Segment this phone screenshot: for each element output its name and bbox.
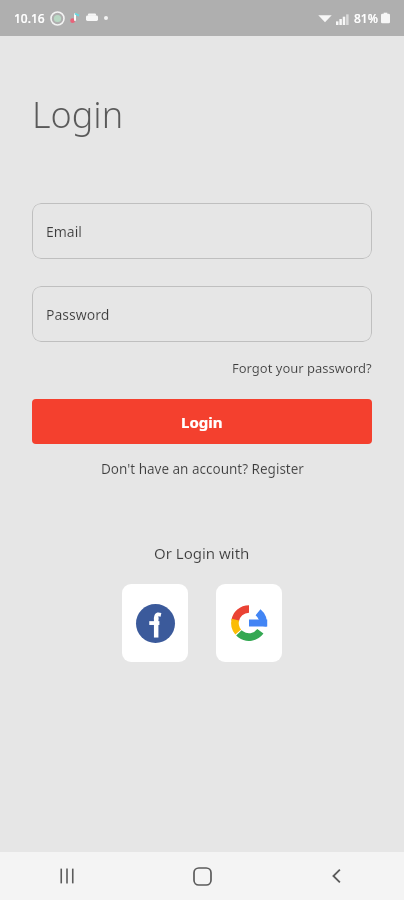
staticText: Or Login with [154,543,250,563]
button[interactable]: Login [32,399,372,444]
button[interactable]: Forgot your password? [232,357,372,379]
staticText: 10.16 [14,10,45,26]
staticText: Password [46,305,110,324]
staticText: Forgot your password? [232,359,372,377]
staticText: Email [46,222,82,241]
staticText: Login [32,90,124,139]
staticText: Don't have an account? Register [101,460,304,478]
button[interactable]: Home [174,852,230,900]
button[interactable]: Sign in with Google [216,584,282,662]
button[interactable]: Email [32,203,372,259]
button[interactable]: Back [309,852,365,900]
button[interactable]: Password [32,286,372,342]
staticText: Login [181,412,223,432]
button[interactable]: Recents [39,852,95,900]
button[interactable]: Don't have an account? Register [101,458,304,480]
staticText: 81% [354,10,378,26]
button[interactable]: Sign in with Facebook [122,584,188,662]
